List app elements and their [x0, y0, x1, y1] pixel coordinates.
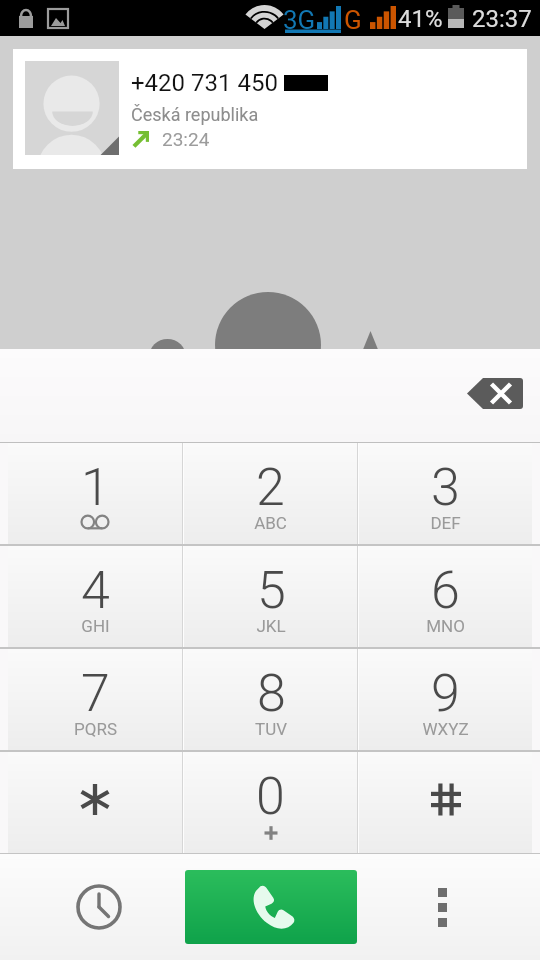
staticText: 8 [257, 663, 286, 724]
staticText: 3 [431, 457, 460, 518]
staticText: G [344, 5, 362, 35]
button[interactable]: 2 [184, 443, 357, 544]
staticText: +420 731 450 [131, 69, 284, 97]
staticText: 7 [81, 663, 110, 724]
button[interactable]: 5 [184, 546, 357, 647]
staticText: 5 [257, 560, 286, 621]
staticText: GHI [81, 616, 110, 636]
staticText: 0 [256, 766, 285, 827]
staticText: 2 [256, 457, 285, 518]
button[interactable] [8, 752, 182, 853]
button[interactable]: Call history [38, 862, 159, 952]
staticText: 6 [431, 560, 460, 621]
staticText: ABC [254, 513, 287, 533]
staticText: 41% [398, 5, 443, 33]
button[interactable]: 8 [184, 649, 357, 750]
staticText: MNO [426, 616, 465, 636]
staticText: PQRS [74, 719, 117, 739]
button[interactable]: 0 [184, 752, 357, 853]
staticText: Česká republika [131, 104, 259, 125]
staticText: 23:37 [472, 5, 532, 33]
staticText: DEF [430, 513, 461, 533]
staticText: 1 [81, 457, 110, 518]
staticText: 3G [283, 5, 316, 35]
staticText: WXYZ [422, 719, 469, 739]
button[interactable]: +420 731 450 [13, 49, 527, 169]
staticText: 9 [431, 663, 460, 724]
button[interactable]: Call [185, 870, 357, 944]
button[interactable]: 4 [8, 546, 182, 647]
button[interactable]: 7 [8, 649, 182, 750]
staticText: TUV [255, 719, 287, 739]
button[interactable] [359, 752, 532, 853]
button[interactable]: 9 [359, 649, 532, 750]
button[interactable]: 1 [8, 443, 182, 544]
staticText: JKL [256, 616, 286, 636]
button[interactable]: More options [382, 862, 503, 952]
staticText: 4 [81, 560, 110, 621]
button[interactable]: Backspace [455, 372, 535, 420]
button[interactable]: 3 [359, 443, 532, 544]
staticText: 23:24 [162, 128, 210, 150]
button[interactable]: 6 [359, 546, 532, 647]
